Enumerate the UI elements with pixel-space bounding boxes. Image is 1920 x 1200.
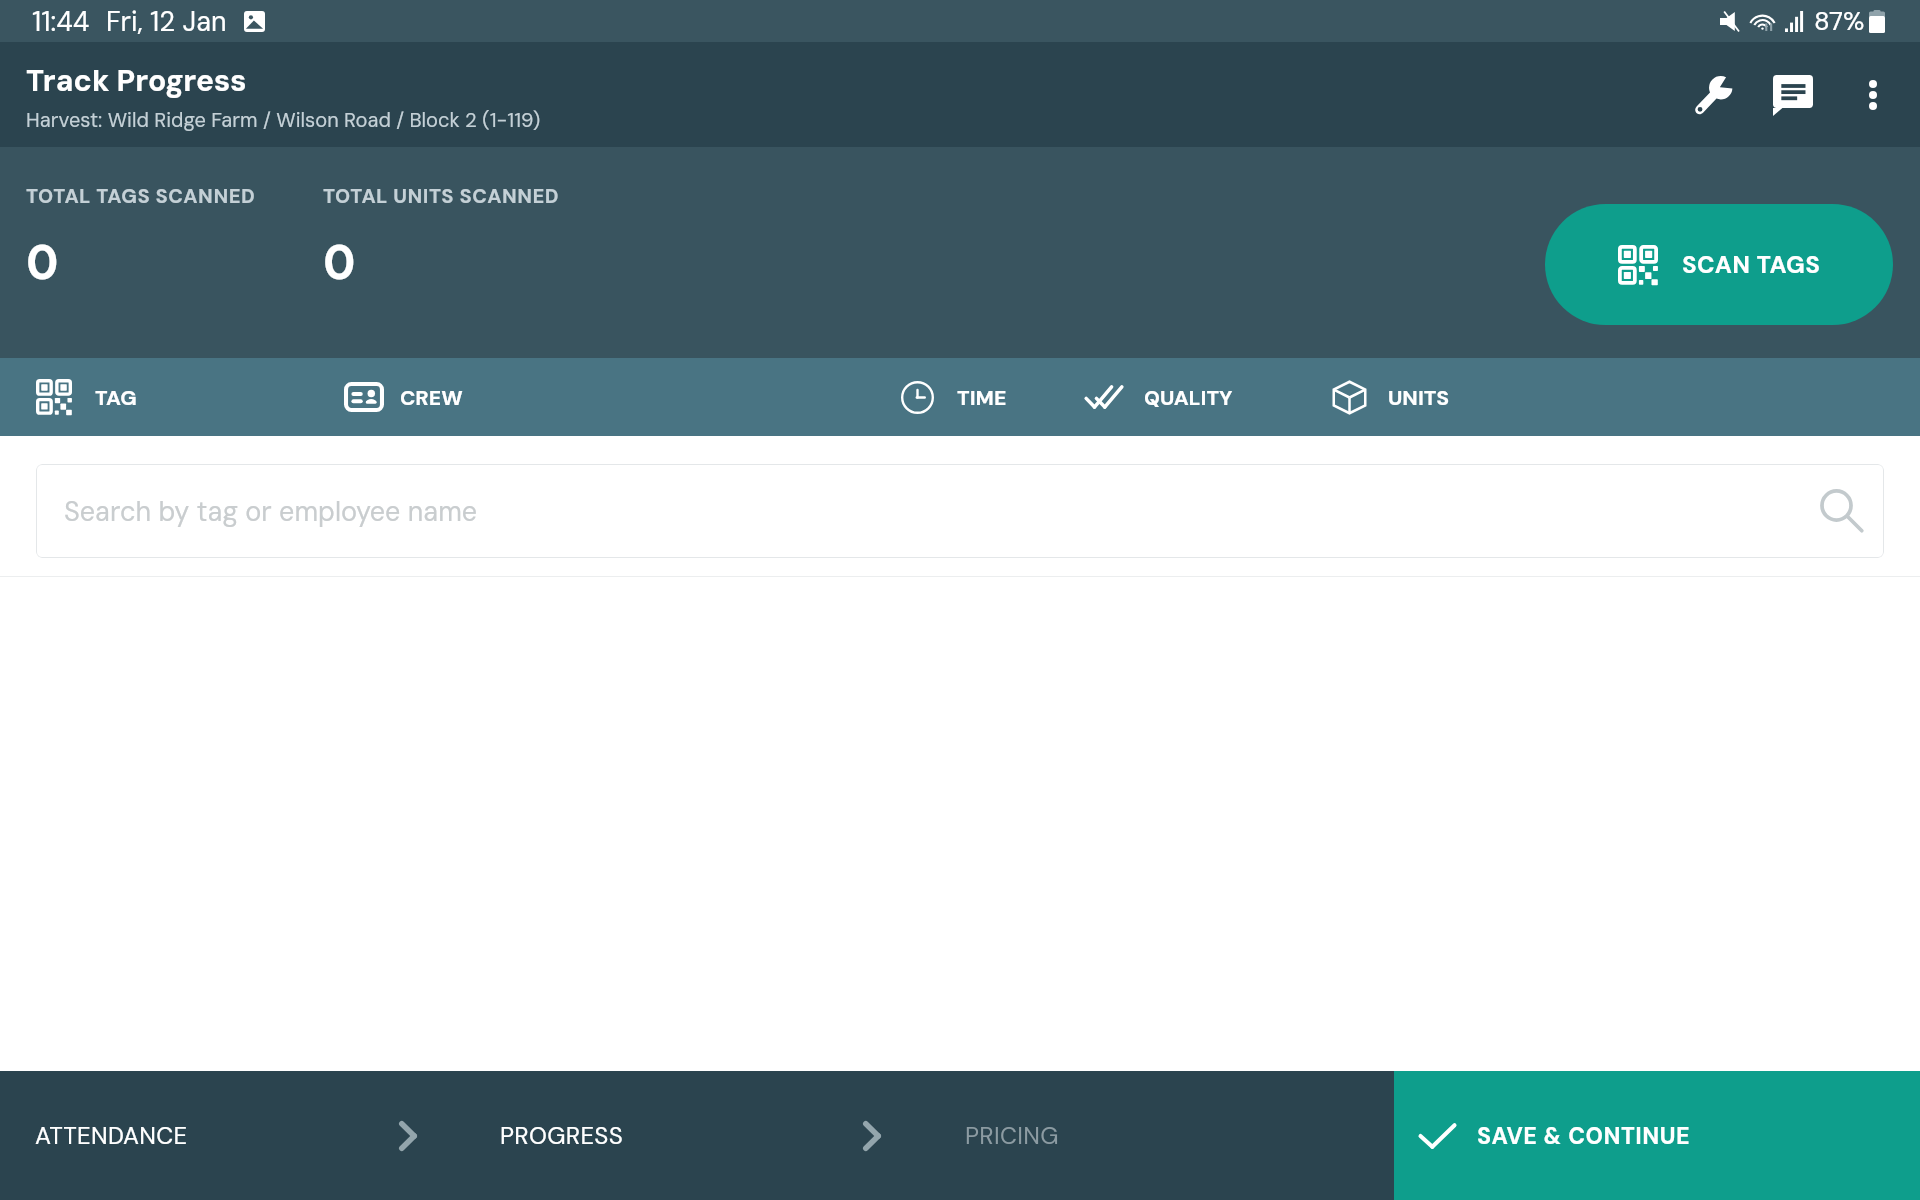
staticText: ATTENDANCE: [35, 1120, 188, 1151]
staticText: 0: [323, 231, 356, 293]
button[interactable]: ATTENDANCE: [0, 1071, 464, 1200]
staticText: TAG: [95, 384, 137, 411]
staticText: SAVE & CONTINUE: [1477, 1121, 1691, 1151]
button[interactable]: PRICING: [929, 1071, 1394, 1200]
staticText: TOTAL TAGS SCANNED: [26, 183, 256, 209]
button[interactable]: PROGRESS: [464, 1071, 929, 1200]
staticText: SCAN TAGS: [1682, 249, 1821, 280]
button[interactable]: Messages: [1753, 55, 1833, 135]
button[interactable]: TAG: [36, 358, 137, 436]
staticText: UNITS: [1388, 384, 1450, 411]
staticText: TOTAL UNITS SCANNED: [323, 183, 560, 209]
staticText: TIME: [957, 384, 1007, 411]
staticText: Harvest: Wild Ridge Farm / Wilson Road /…: [26, 107, 541, 133]
staticText: PRICING: [965, 1120, 1059, 1151]
button[interactable]: Tools: [1673, 55, 1753, 135]
button[interactable]: TIME: [901, 358, 1007, 436]
button[interactable]: SCAN TAGS: [1545, 204, 1893, 325]
staticText: 11:44: [32, 4, 90, 39]
button[interactable]: SAVE & CONTINUE: [1394, 1071, 1920, 1200]
staticText: CREW: [400, 384, 463, 411]
staticText: 0: [26, 231, 59, 293]
button[interactable]: CREW: [344, 358, 463, 436]
staticText: Fri, 12 Jan: [106, 4, 227, 39]
staticText: 87%: [1814, 4, 1865, 38]
button[interactable]: More options: [1833, 55, 1913, 135]
staticText: QUALITY: [1144, 384, 1233, 411]
staticText: Track Progress: [26, 61, 247, 100]
button[interactable]: UNITS: [1332, 358, 1450, 436]
button[interactable]: QUALITY: [1085, 358, 1233, 436]
button[interactable]: Search by tag or employee name: [36, 464, 1884, 558]
staticText: PROGRESS: [500, 1120, 624, 1151]
staticText: Search by tag or employee name: [64, 494, 478, 529]
